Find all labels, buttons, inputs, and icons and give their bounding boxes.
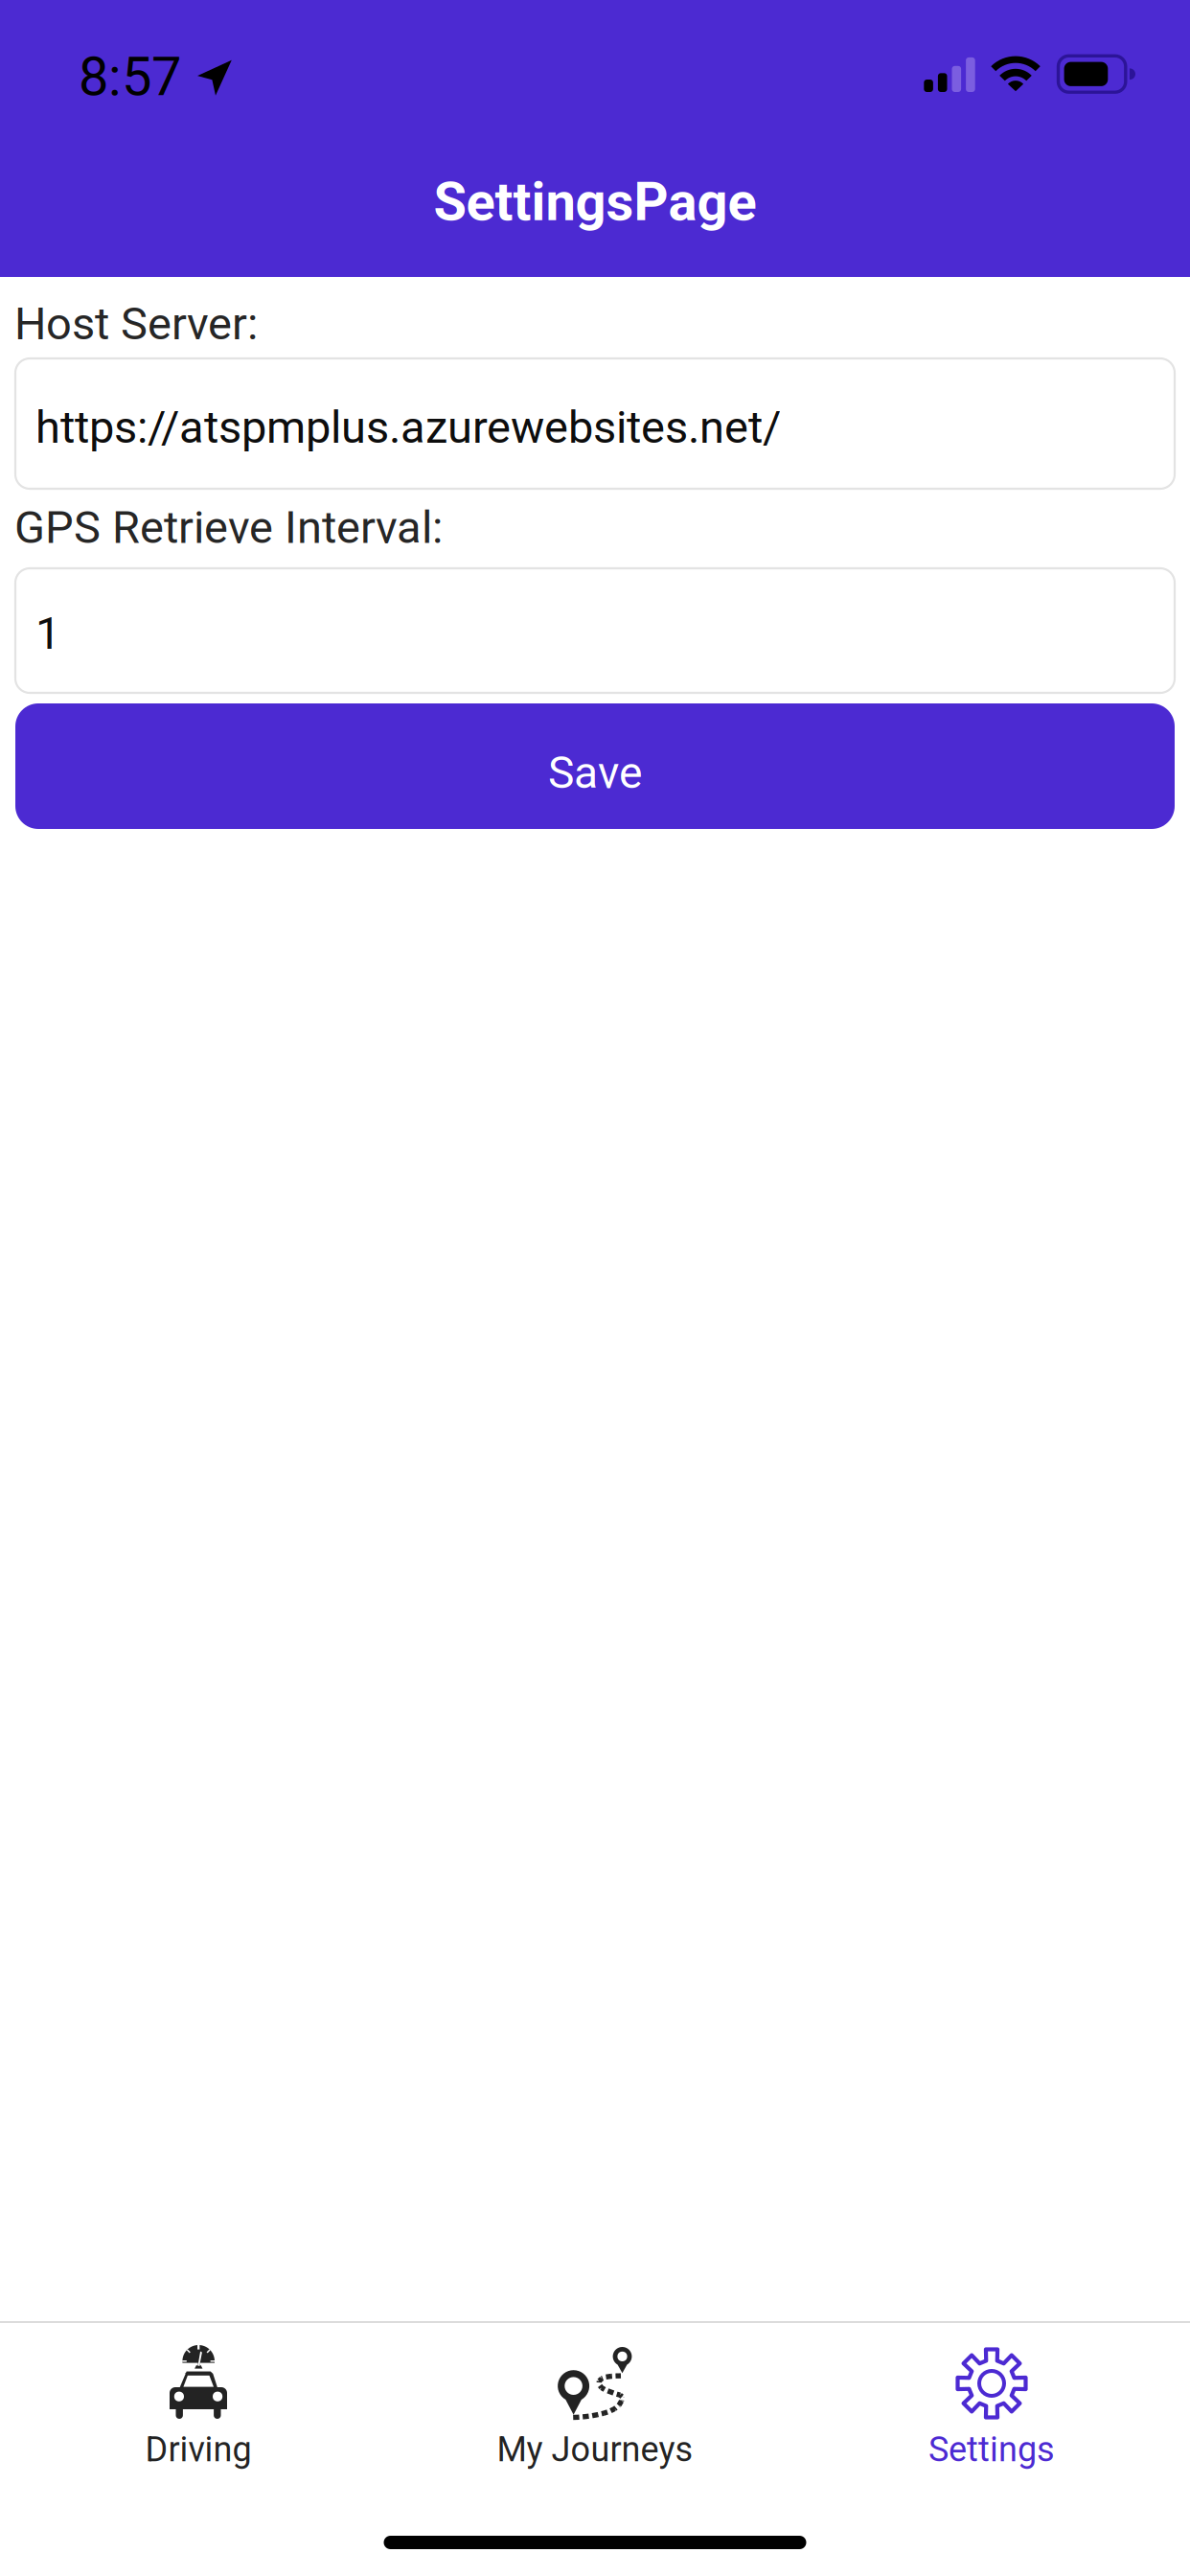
staticText: Driving: [145, 2429, 252, 2470]
staticText: 8:57: [79, 45, 181, 108]
staticText: https://atspmplus.azurewebsites.net/: [35, 401, 781, 454]
staticText: My Journeys: [497, 2429, 693, 2470]
staticText: Settings: [928, 2429, 1055, 2470]
button[interactable]: Driving: [0, 2345, 397, 2467]
staticText: GPS Retrieve Interval:: [14, 501, 443, 554]
button[interactable]: My Journeys: [397, 2345, 793, 2467]
staticText: Host Server:: [14, 298, 258, 350]
button[interactable]: Save: [15, 703, 1175, 829]
staticText: SettingsPage: [434, 170, 756, 233]
button[interactable]: Settings: [793, 2345, 1190, 2467]
staticText: Save: [548, 747, 642, 799]
staticText: 1: [35, 607, 60, 660]
